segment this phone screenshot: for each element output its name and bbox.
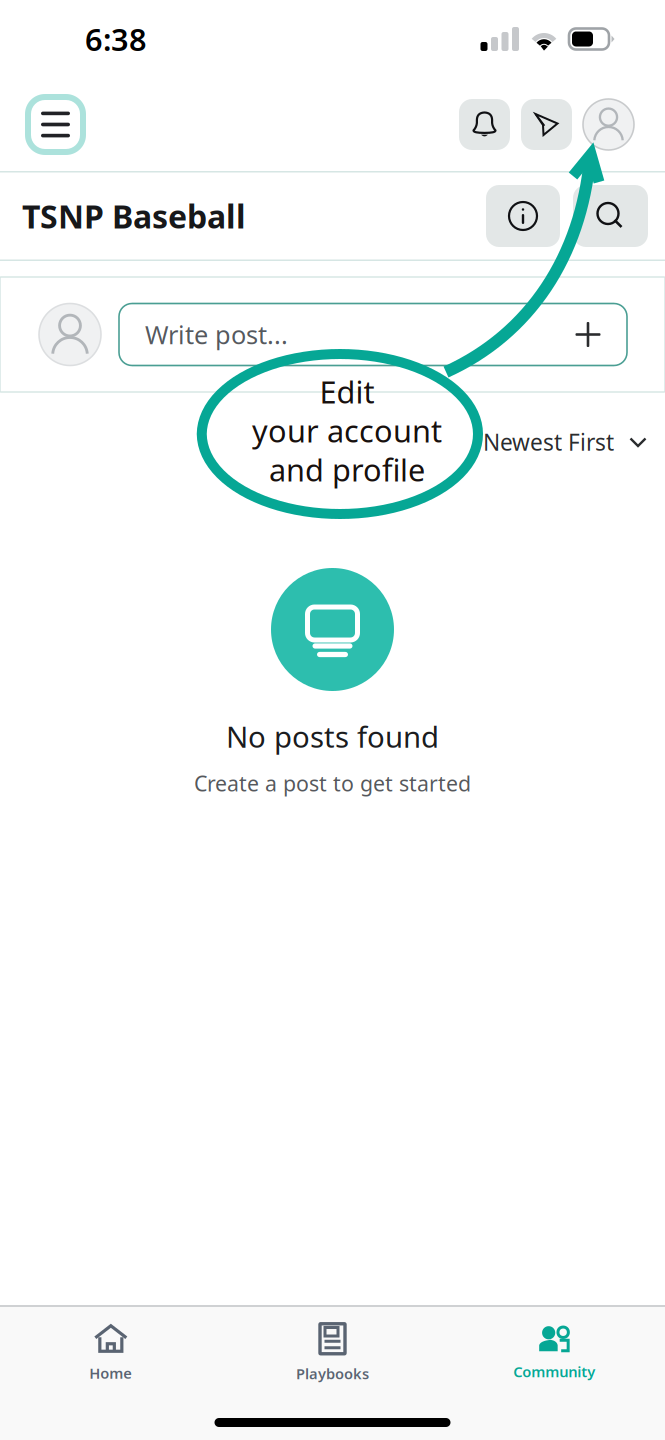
staticText: Community: [513, 1362, 595, 1381]
button[interactable]: Menu: [25, 94, 86, 155]
button[interactable]: Playbooks: [222, 1311, 443, 1395]
staticText: Playbooks: [296, 1364, 369, 1383]
staticText: TSNP Baseball: [22, 195, 246, 237]
staticText: Newest First: [483, 427, 614, 457]
staticText: and profile: [269, 449, 425, 490]
staticText: Write post...: [145, 318, 288, 351]
button[interactable]: Info: [486, 185, 560, 247]
button[interactable]: Newest First: [483, 417, 648, 467]
button[interactable]: Community: [443, 1311, 665, 1395]
button[interactable]: Messages: [521, 99, 572, 150]
button[interactable]: Notifications: [459, 99, 510, 150]
button[interactable]: Home: [0, 1311, 222, 1395]
button[interactable]: Profile: [583, 99, 634, 150]
staticText: your account: [252, 410, 442, 451]
staticText: Edit: [319, 371, 374, 412]
button[interactable]: Search: [573, 185, 648, 247]
staticText: 6:38: [85, 19, 147, 59]
staticText: Create a post to get started: [194, 769, 471, 797]
staticText: No posts found: [226, 717, 439, 756]
staticText: Home: [89, 1363, 132, 1383]
